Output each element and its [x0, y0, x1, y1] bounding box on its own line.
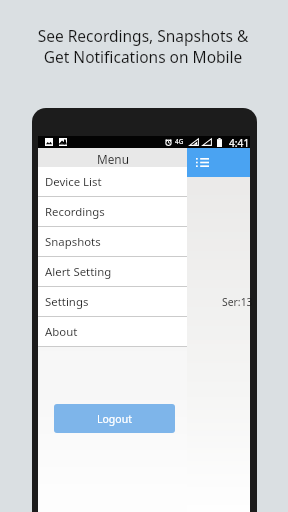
staticText: Recordings: [45, 204, 105, 220]
staticText: Settings: [45, 294, 89, 310]
staticText: Logout: [97, 412, 132, 426]
staticText: Menu: [97, 151, 129, 167]
staticText: About: [45, 324, 78, 340]
staticText: Ser:13: [222, 295, 253, 309]
button[interactable]: About: [38, 317, 187, 347]
button[interactable]: Logout: [54, 404, 175, 433]
staticText: Alert Setting: [45, 264, 112, 280]
staticText: See Recordings, Snapshots & Get Notifica…: [0, 25, 287, 67]
staticText: Device List: [45, 174, 102, 190]
button[interactable]: Snapshots: [38, 227, 187, 257]
button[interactable]: Alert Setting: [38, 257, 187, 287]
button[interactable]: Open navigation menu: [38, 148, 250, 177]
staticText: 4G: [175, 137, 184, 146]
staticText: 4:41: [229, 136, 250, 148]
button[interactable]: Recordings: [38, 197, 187, 227]
button[interactable]: Device List: [38, 167, 187, 197]
staticText: Snapshots: [45, 234, 101, 250]
button[interactable]: Settings: [38, 287, 187, 317]
